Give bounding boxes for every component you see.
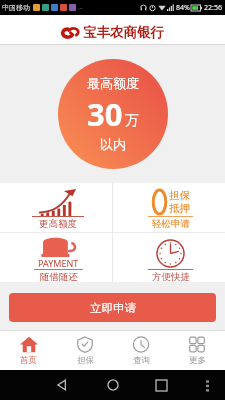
staticText: 随借随还	[40, 271, 78, 283]
other: Home	[107, 379, 119, 391]
staticText: 84%	[176, 3, 190, 13]
staticText: 30	[87, 93, 123, 135]
staticText: ···	[78, 4, 83, 12]
button[interactable]: PAYMENT	[0, 233, 112, 282]
button[interactable]: 首页	[0, 331, 57, 370]
button[interactable]: 更多	[169, 331, 225, 370]
staticText: 宝丰农商银行	[83, 24, 164, 41]
button[interactable]: 担保	[57, 331, 113, 370]
button[interactable]: 立即申请	[9, 293, 216, 322]
staticText: 担保	[169, 189, 190, 202]
staticText: 更高额度	[39, 218, 77, 230]
staticText: 方便快捷	[152, 271, 190, 283]
staticText: 以内	[100, 136, 126, 152]
staticText: 最高额度	[87, 75, 139, 91]
staticText: PAYMENT	[38, 257, 79, 269]
button[interactable]: 更高额度	[0, 183, 112, 232]
staticText: 首页	[20, 355, 37, 366]
staticText: 担保	[77, 355, 94, 366]
staticText: 查询	[133, 355, 150, 366]
staticText: 立即申请	[90, 301, 136, 315]
staticText: 中国移动	[2, 3, 30, 12]
staticText: 22:56	[204, 3, 222, 13]
other: Back	[56, 379, 68, 391]
staticText: 抵押	[169, 202, 190, 215]
button[interactable]: 担保	[113, 183, 225, 232]
button[interactable]: 方便快捷	[113, 233, 225, 282]
staticText: 轻松申请	[152, 218, 190, 230]
other: Menu	[206, 380, 209, 391]
staticText: 万	[125, 112, 139, 130]
staticText: 更多	[189, 355, 206, 366]
other: Recents	[156, 380, 167, 391]
button[interactable]: 查询	[113, 331, 169, 370]
